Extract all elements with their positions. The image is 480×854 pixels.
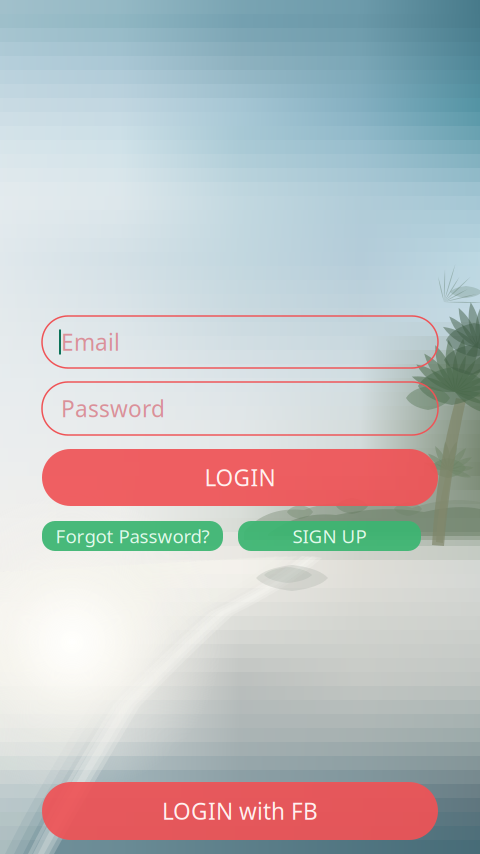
staticText: LOGIN with FB — [162, 796, 318, 826]
button[interactable]: Password — [42, 382, 438, 435]
button[interactable]: LOGIN — [42, 449, 438, 506]
button[interactable]: SIGN UP — [238, 521, 421, 551]
button[interactable]: Forgot Password? — [42, 521, 223, 551]
staticText: Forgot Password? — [55, 524, 209, 548]
staticText: LOGIN — [204, 462, 275, 492]
staticText: Email — [61, 327, 120, 357]
button[interactable]: LOGIN with FB — [42, 782, 438, 840]
staticText: Password — [61, 393, 165, 423]
button[interactable]: Email — [42, 316, 438, 368]
staticText: SIGN UP — [292, 524, 366, 548]
